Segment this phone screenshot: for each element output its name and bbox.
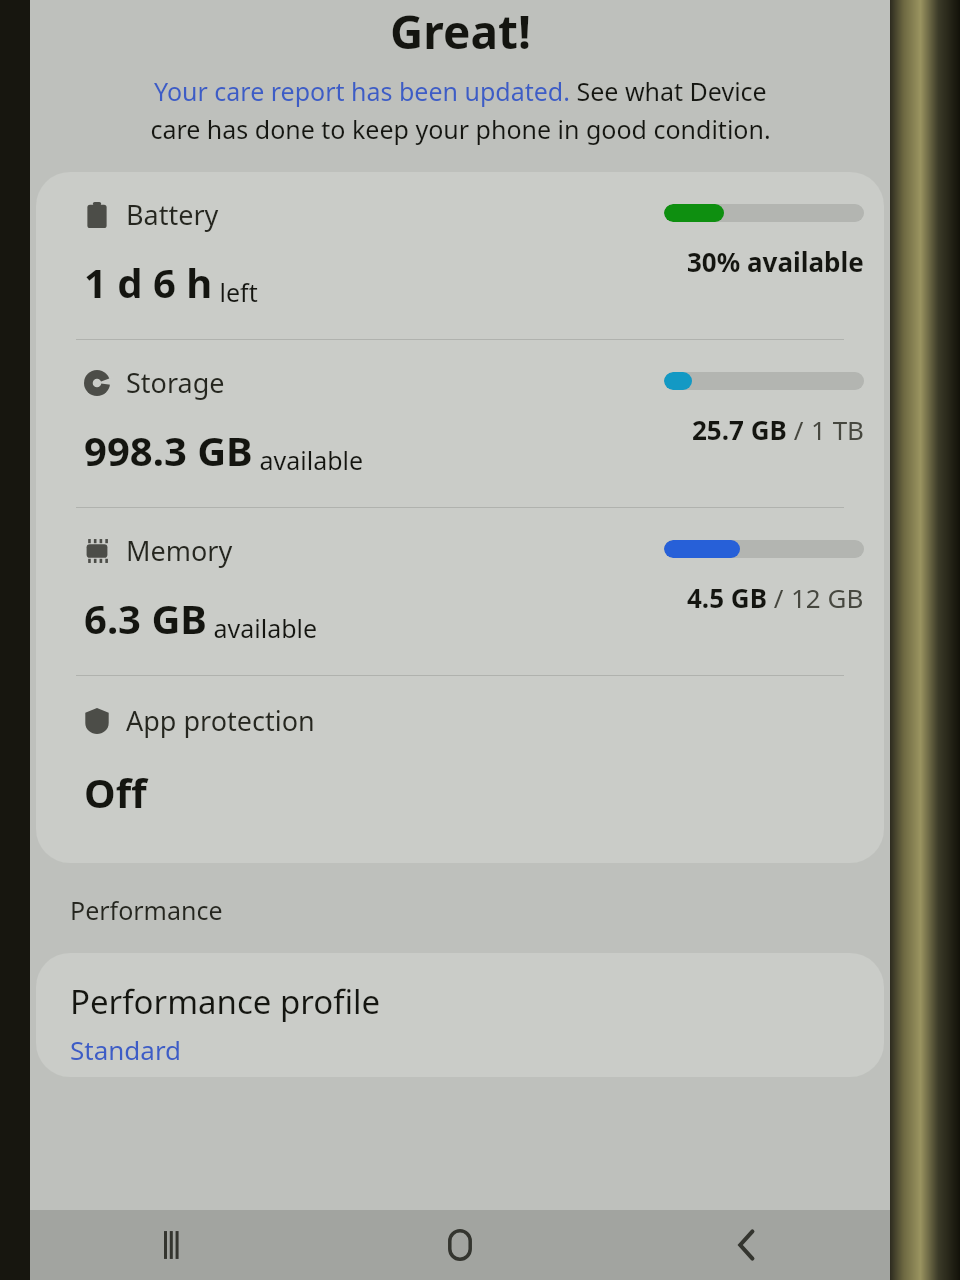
staticText: 30% available bbox=[687, 244, 864, 279]
staticText: App protection bbox=[126, 702, 315, 739]
button[interactable]: Performance profile bbox=[36, 953, 884, 1077]
staticText: 6.3 GB bbox=[84, 591, 207, 645]
button[interactable]: Memory bbox=[36, 508, 884, 675]
staticText: 1 d 6 h bbox=[84, 255, 213, 309]
staticText: Battery bbox=[126, 196, 219, 233]
staticText: Performance profile bbox=[70, 979, 381, 1024]
staticText: Standard bbox=[70, 1032, 182, 1067]
staticText: Your care report has been updated. bbox=[154, 74, 570, 108]
staticText: / bbox=[767, 580, 791, 615]
staticText: / bbox=[787, 412, 811, 447]
staticText: available bbox=[253, 443, 364, 477]
staticText: care has done to keep your phone in good… bbox=[150, 112, 771, 146]
staticText: 25.7 GB bbox=[692, 412, 787, 447]
staticText: Memory bbox=[126, 532, 233, 569]
staticText: 998.3 GB bbox=[84, 423, 253, 477]
button[interactable]: App protection bbox=[36, 676, 884, 863]
staticText: available bbox=[207, 611, 318, 645]
staticText: left bbox=[213, 275, 258, 309]
staticText: Off bbox=[84, 765, 147, 819]
button[interactable]: Storage bbox=[36, 340, 884, 507]
staticText: 1 TB bbox=[811, 412, 864, 447]
button[interactable]: Recents bbox=[30, 1210, 316, 1280]
button[interactable]: Battery bbox=[36, 172, 884, 339]
staticText: Great! bbox=[390, 0, 531, 62]
button[interactable]: Home bbox=[316, 1210, 603, 1280]
staticText: Storage bbox=[126, 364, 225, 401]
staticText: Performance bbox=[70, 893, 223, 927]
staticText: 4.5 GB bbox=[687, 580, 767, 615]
staticText: 12 GB bbox=[791, 580, 864, 615]
staticText: See what Device bbox=[570, 74, 767, 108]
button[interactable]: Back bbox=[603, 1210, 890, 1280]
